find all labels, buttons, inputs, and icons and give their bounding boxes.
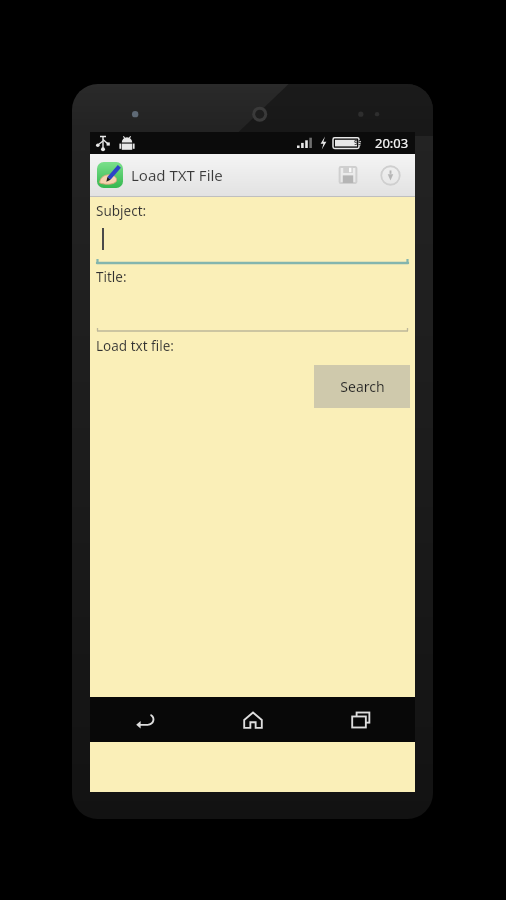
staticText: Subject: <box>96 202 147 220</box>
staticText: Load txt file: <box>96 337 174 355</box>
button[interactable] <box>95 286 410 334</box>
button[interactable]: Search <box>314 365 410 408</box>
staticText: 95 <box>354 138 363 148</box>
staticText: Search <box>340 377 385 396</box>
button[interactable]: Recent apps <box>307 697 415 742</box>
button[interactable]: Back <box>90 697 199 742</box>
button[interactable] <box>95 220 410 266</box>
staticText: Load TXT File <box>131 165 223 185</box>
button[interactable]: Save <box>330 157 366 193</box>
button[interactable]: App icon <box>97 162 123 188</box>
staticText: Title: <box>96 268 127 286</box>
button[interactable]: Home <box>199 697 307 742</box>
button[interactable]: Info <box>372 157 408 193</box>
staticText: 20:03 <box>375 134 409 152</box>
